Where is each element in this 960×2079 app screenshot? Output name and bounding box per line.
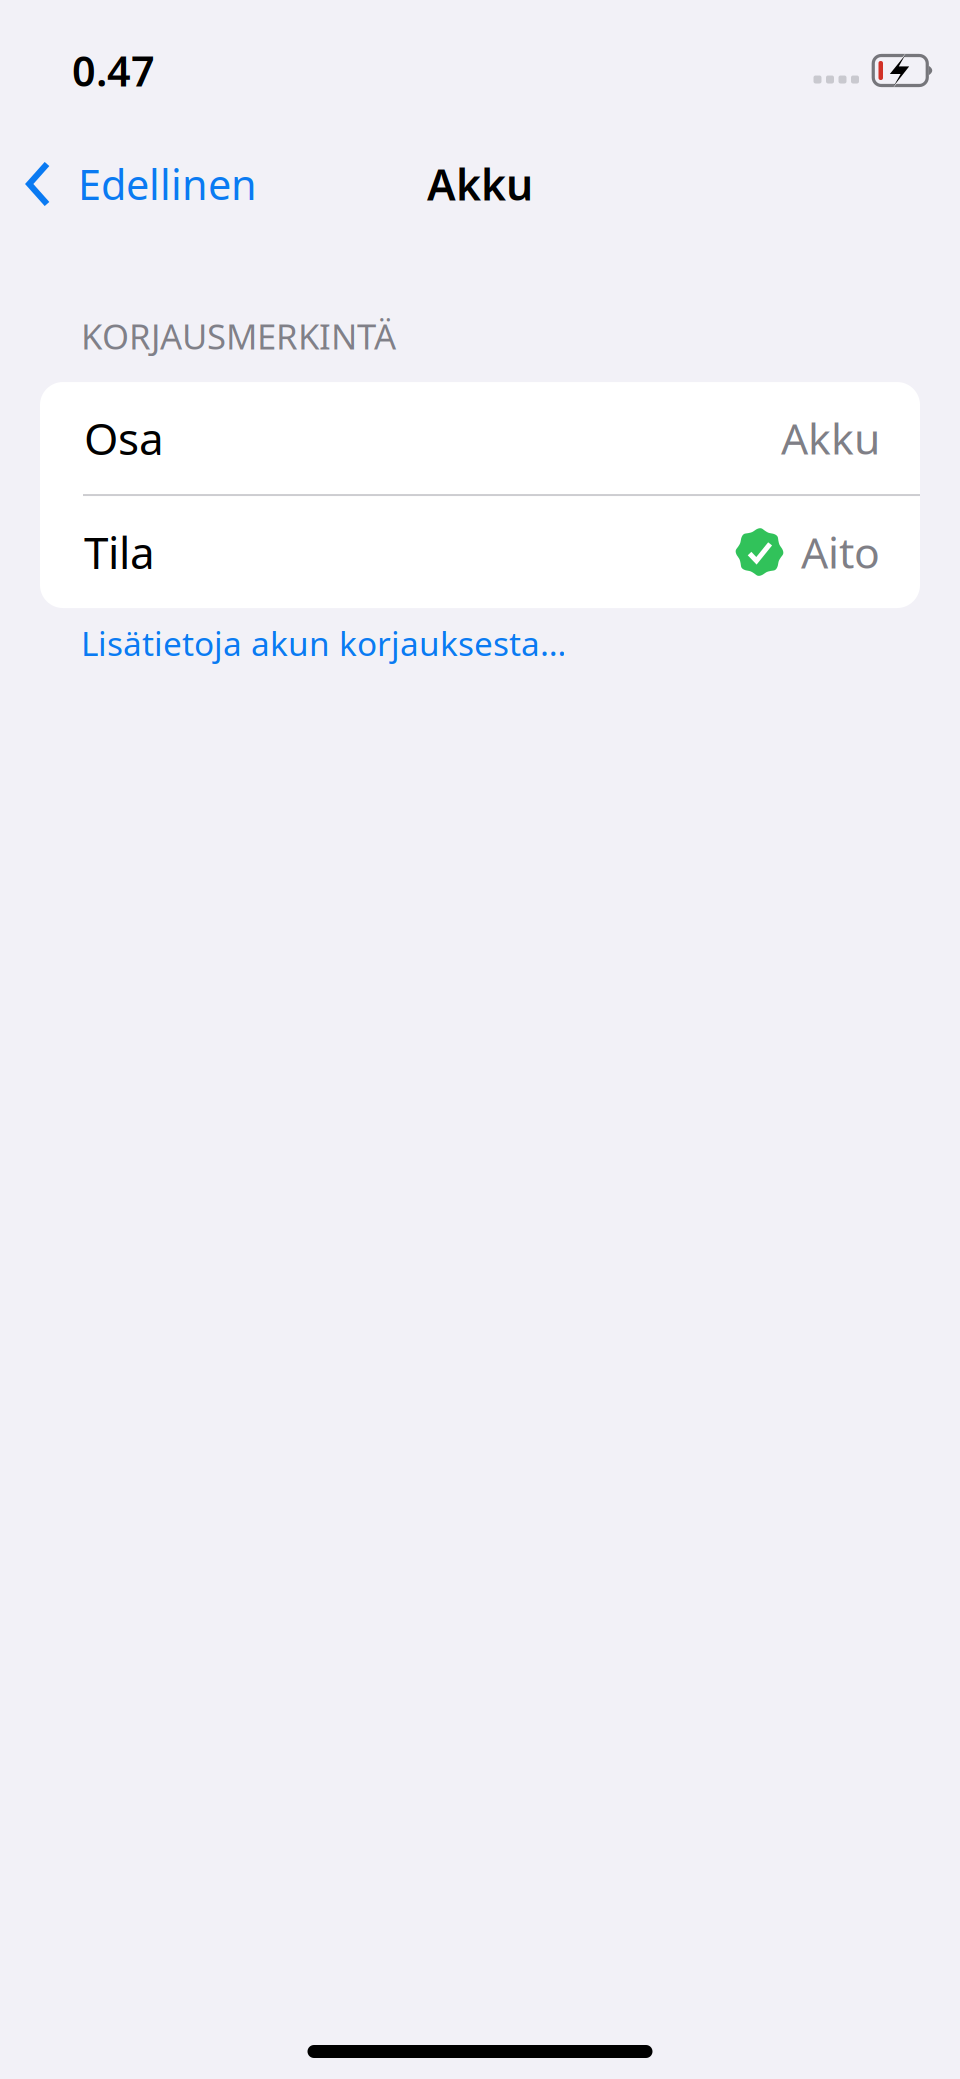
staticText: Osa [84,409,164,467]
staticText: KORJAUSMERKINTÄ [81,313,396,359]
button[interactable]: Tila [40,496,920,608]
staticText: Tila [84,523,155,581]
staticText: Akku [427,156,533,212]
staticText: 0.47 [72,43,155,98]
button[interactable]: Osa [40,382,920,494]
staticText: Lisätietoja akun korjauksesta… [81,621,566,665]
button[interactable]: Takaisin: Edellinen [0,135,273,233]
staticText: Akku [781,410,880,466]
staticText: Edellinen [78,157,257,211]
staticText: Aito [801,524,880,580]
button[interactable]: Lisätietoja akun korjauksesta… [81,615,566,671]
